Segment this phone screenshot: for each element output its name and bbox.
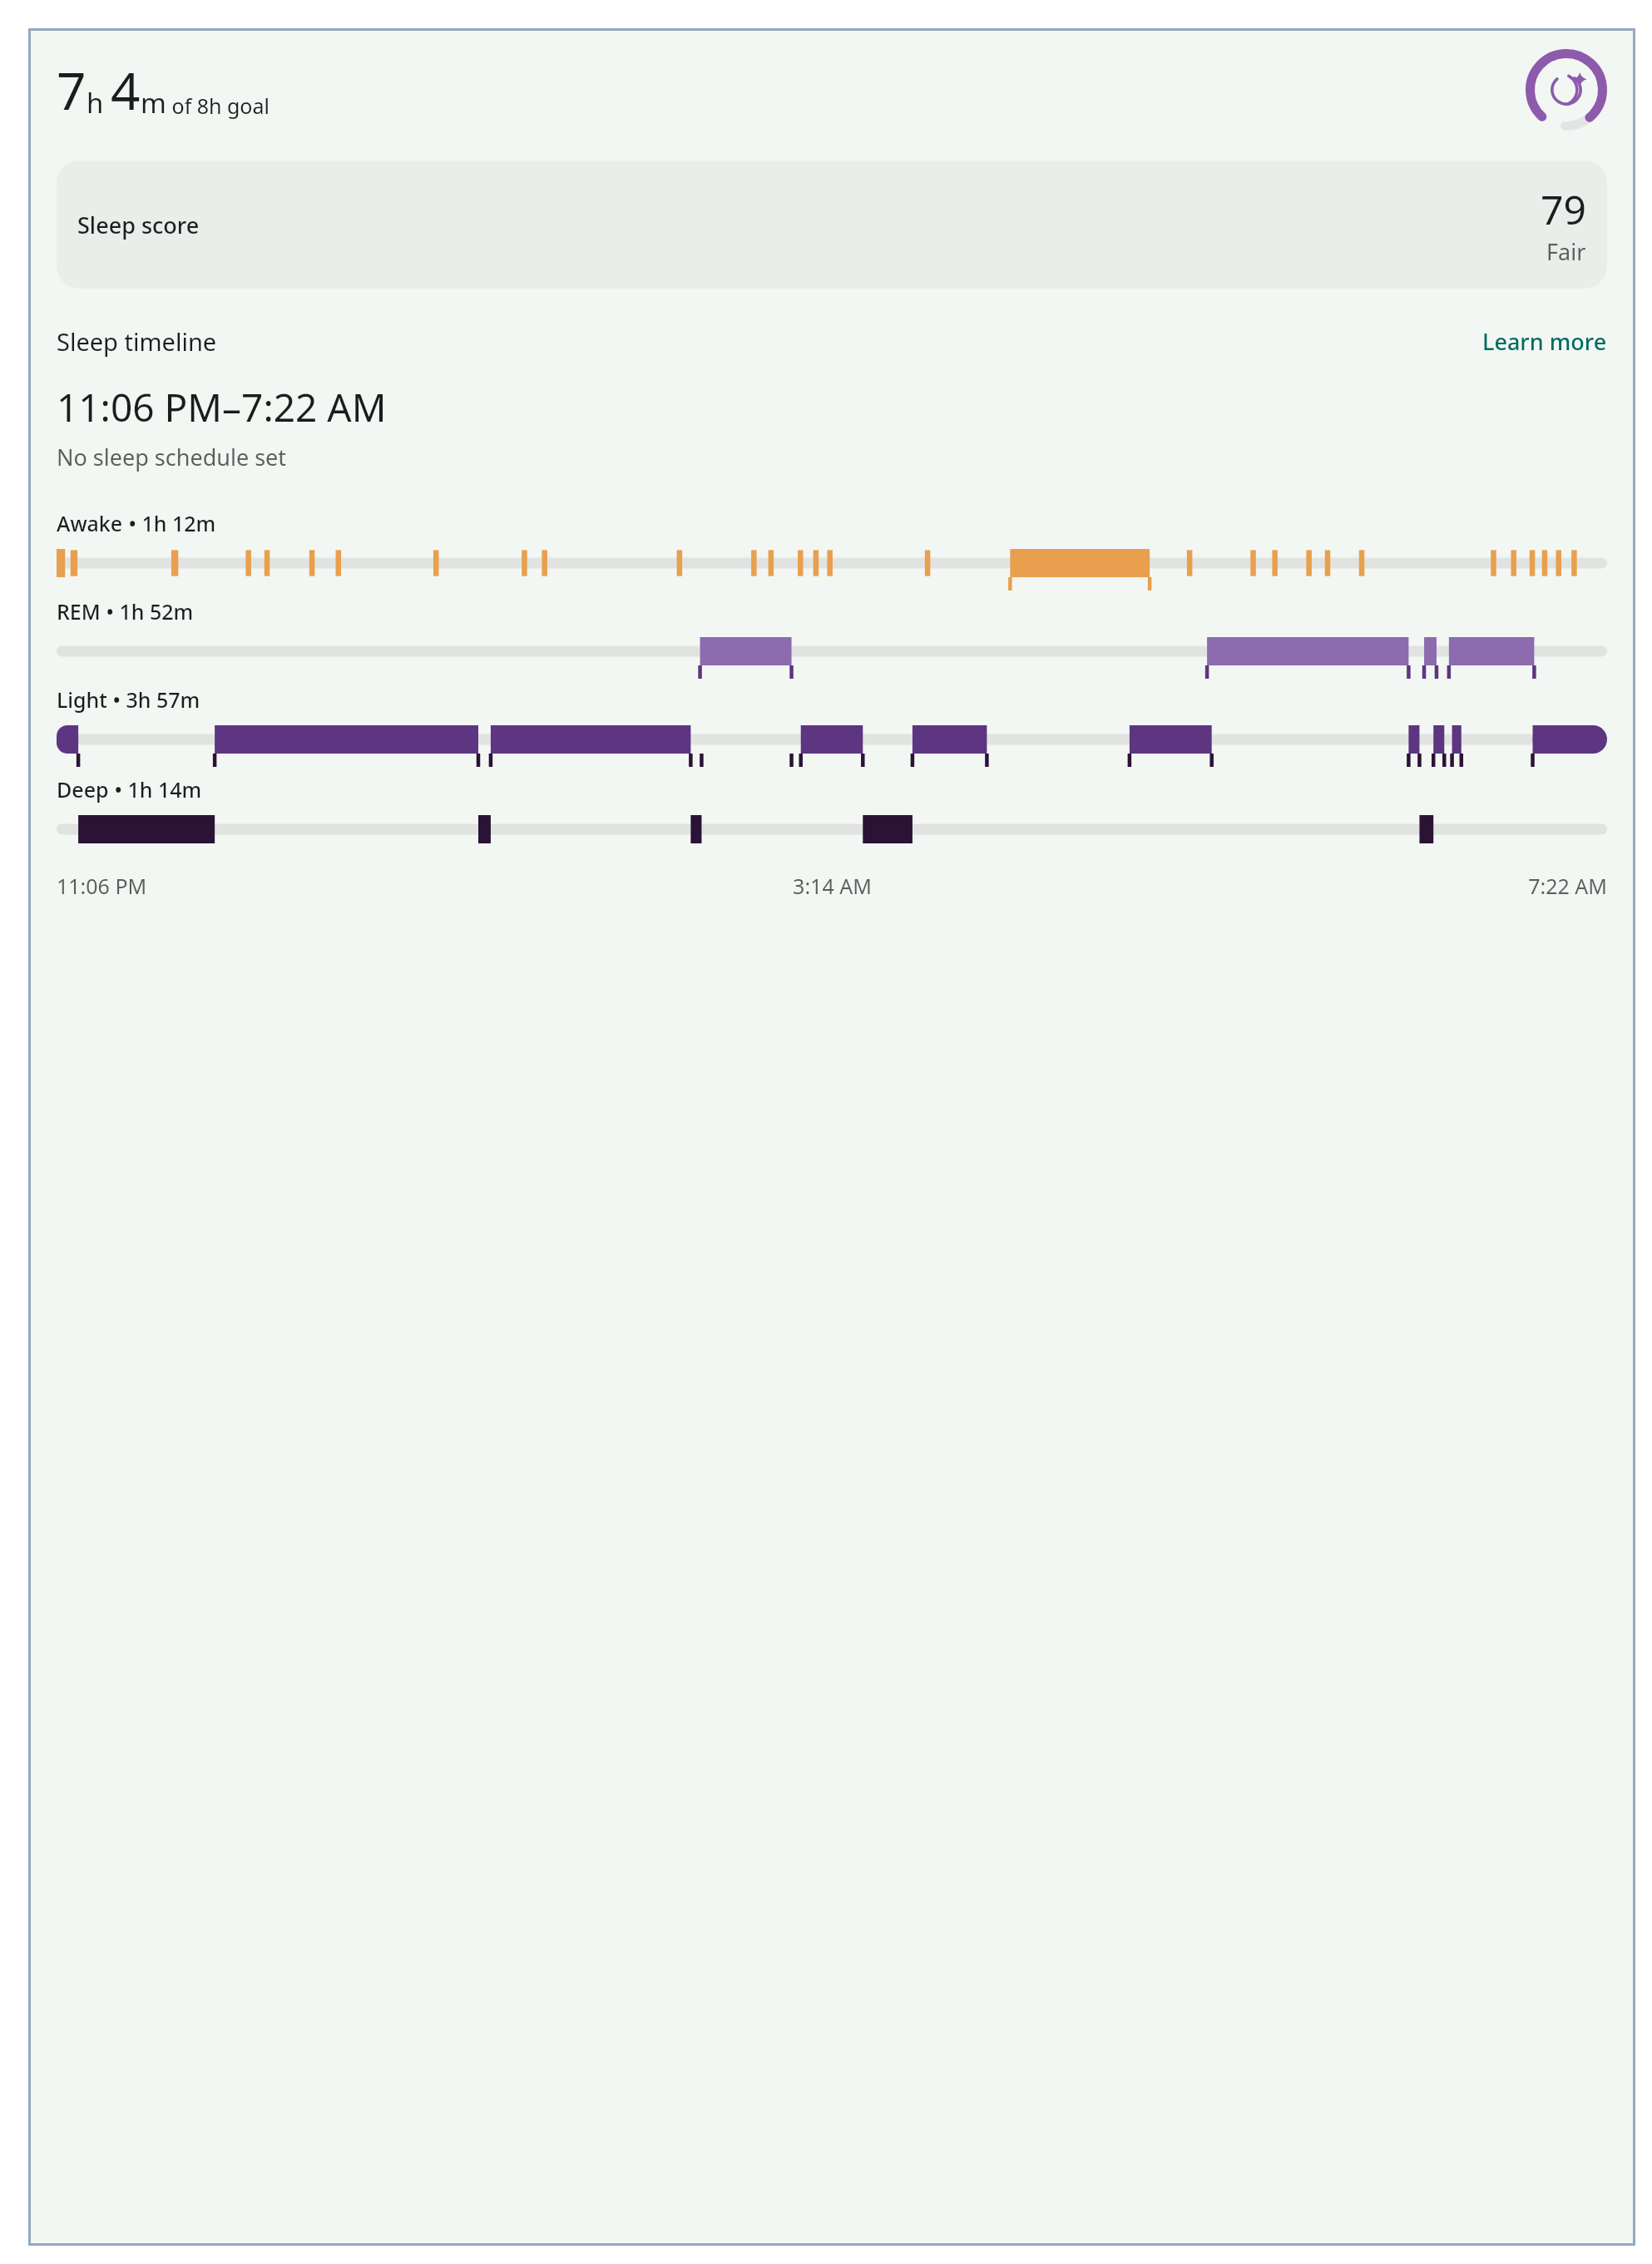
staticText: 11:06 PM–7:22 AM [57, 381, 387, 433]
staticText: 7 [57, 55, 87, 125]
staticText: h [87, 84, 111, 121]
button[interactable]: Learn more [1482, 326, 1607, 357]
staticText: m [141, 84, 166, 121]
staticText: • 1h 12m [123, 509, 216, 537]
staticText: of 8h goal [166, 91, 270, 120]
staticText: Awake [57, 509, 123, 537]
staticText: Sleep timeline [57, 325, 1482, 358]
staticText: 4 [111, 55, 141, 125]
staticText: • 1h 52m [101, 597, 194, 625]
button[interactable]: Sleep score [57, 161, 1607, 289]
staticText: Deep [57, 775, 109, 803]
staticText: 79 [1541, 182, 1586, 236]
button[interactable]: Sleep goal progress [1526, 49, 1607, 131]
staticText: REM [57, 597, 101, 625]
staticText: 3:14 AM [574, 872, 1091, 900]
staticText: 11:06 PM [57, 872, 574, 900]
staticText: Light [57, 685, 107, 714]
staticText: • 3h 57m [107, 685, 200, 714]
staticText: 7:22 AM [1091, 872, 1607, 900]
staticText: Learn more [1482, 326, 1607, 357]
staticText: Sleep score [77, 210, 200, 240]
staticText: • 1h 14m [109, 775, 202, 803]
staticText: Fair [1546, 236, 1586, 267]
staticText: No sleep schedule set [57, 442, 287, 472]
